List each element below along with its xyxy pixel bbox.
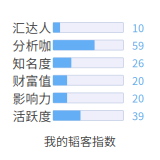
staticText: 分析咖 (12, 36, 51, 54)
staticText: 汇达人 (12, 18, 51, 37)
staticText: 影响力 (12, 89, 51, 107)
button[interactable]: 知名度 (12, 58, 150, 68)
staticText: 59 (132, 37, 144, 53)
staticText: 财富值 (12, 71, 51, 89)
button[interactable]: 财富值 (12, 75, 150, 85)
button[interactable]: 影响力 (12, 93, 150, 103)
staticText: 20 (132, 90, 144, 106)
staticText: 10 (132, 20, 144, 35)
staticText: 知名度 (12, 53, 51, 72)
staticText: 26 (132, 55, 144, 70)
button[interactable]: 活跃度 (12, 110, 150, 120)
staticText: 20 (132, 73, 144, 88)
button[interactable]: 分析咖 (12, 40, 150, 50)
staticText: 39 (132, 108, 144, 123)
staticText: 活跃度 (12, 106, 51, 125)
staticText: 我的韬客指数 (44, 132, 116, 149)
button[interactable]: 汇达人 (12, 22, 150, 32)
